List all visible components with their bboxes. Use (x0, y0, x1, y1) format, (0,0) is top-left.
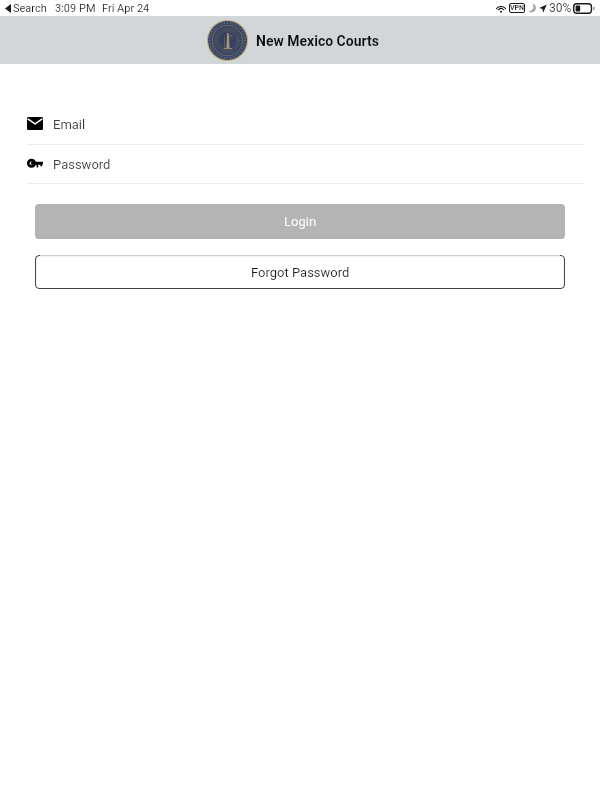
staticText: Password (53, 157, 111, 172)
button[interactable]: Email (0, 104, 600, 145)
staticText: 30% (549, 1, 572, 15)
staticText: 3:09 PM (55, 2, 96, 15)
staticText: Fri Apr 24 (102, 2, 150, 15)
staticText: Email (53, 117, 86, 132)
button[interactable]: Forgot Password (35, 255, 565, 289)
staticText: Forgot Password (251, 265, 350, 280)
staticText: Login (284, 214, 317, 229)
staticText: VPN (510, 4, 525, 12)
staticText: New Mexico Courts (256, 33, 379, 49)
button[interactable]: Login (35, 204, 565, 239)
other: Email (27, 117, 43, 130)
button[interactable]: Password (0, 145, 600, 184)
staticText: Search (13, 2, 47, 15)
other: Password (27, 159, 43, 168)
